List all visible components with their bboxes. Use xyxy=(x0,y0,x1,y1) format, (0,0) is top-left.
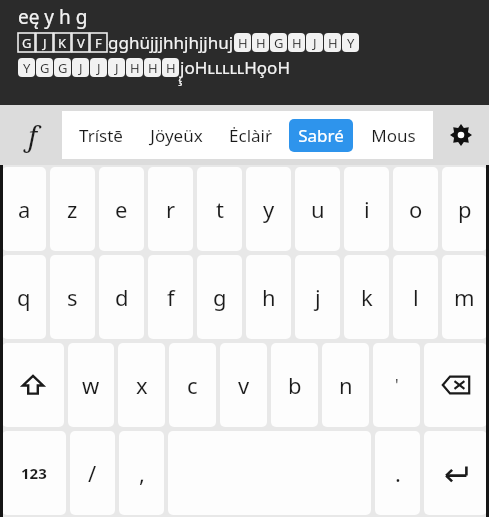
button[interactable]: m xyxy=(442,255,487,339)
button[interactable]: 123 xyxy=(2,431,66,515)
staticText: x xyxy=(136,370,148,400)
button[interactable]: u xyxy=(295,167,340,251)
staticText: n xyxy=(339,370,353,400)
staticText: Trístē xyxy=(79,124,123,147)
staticText: 123 xyxy=(21,463,47,483)
staticText: G xyxy=(22,34,32,52)
button[interactable]: Mous xyxy=(362,119,425,152)
staticText: a xyxy=(18,194,31,224)
staticText: w xyxy=(82,370,100,400)
button[interactable]: Backspace xyxy=(424,343,487,427)
button[interactable]: o xyxy=(393,167,438,251)
staticText: Sabré xyxy=(298,124,344,147)
button[interactable]: j xyxy=(295,255,340,339)
staticText: k xyxy=(361,282,373,312)
staticText: ' xyxy=(395,374,399,396)
button[interactable]: r xyxy=(148,167,193,251)
staticText: K xyxy=(58,34,67,52)
staticText: H xyxy=(130,59,140,77)
staticText: g xyxy=(213,282,227,312)
staticText: d xyxy=(115,282,129,312)
button[interactable]: n xyxy=(322,343,369,427)
staticText: H xyxy=(166,59,176,77)
staticText: H xyxy=(256,34,266,52)
staticText: G xyxy=(40,59,50,77)
staticText: Mous xyxy=(371,124,416,147)
staticText: Y xyxy=(23,59,31,77)
button[interactable]: p xyxy=(442,167,487,251)
staticText: F xyxy=(95,34,102,52)
button[interactable]: i xyxy=(344,167,389,251)
staticText: v xyxy=(238,370,250,400)
staticText: z xyxy=(67,194,78,224)
button[interactable]: k xyxy=(344,255,389,339)
staticText: J xyxy=(43,34,47,52)
button[interactable]: f xyxy=(148,255,193,339)
staticText: f xyxy=(167,282,175,312)
staticText: o xyxy=(409,194,423,224)
button[interactable]: ' xyxy=(373,343,420,427)
button[interactable]: c xyxy=(169,343,216,427)
button[interactable]: Shift xyxy=(2,343,64,427)
staticText: G xyxy=(274,34,284,52)
button[interactable]: / xyxy=(70,431,115,515)
staticText: J xyxy=(79,59,83,77)
button[interactable]: Trístē xyxy=(70,119,132,152)
staticText: Ėclàiṙ xyxy=(229,124,272,147)
staticText: V xyxy=(77,34,85,52)
staticText: i xyxy=(364,194,370,224)
staticText: p xyxy=(458,194,472,224)
button[interactable]: g xyxy=(197,255,242,339)
staticText: j xyxy=(315,282,321,312)
button[interactable]: s xyxy=(50,255,95,339)
button[interactable]: w xyxy=(68,343,114,427)
button[interactable]: Text formatting xyxy=(0,105,62,165)
button[interactable]: b xyxy=(271,343,318,427)
button[interactable]: Ėclàiṙ xyxy=(220,119,281,152)
button[interactable]: h xyxy=(246,255,291,339)
button[interactable]: Sabré xyxy=(289,119,353,152)
staticText: J xyxy=(313,34,317,52)
button[interactable]: Enter xyxy=(424,431,487,515)
button[interactable]: Jöyeüx xyxy=(141,119,212,152)
staticText: b xyxy=(288,370,302,400)
staticText: / xyxy=(88,458,97,488)
button[interactable]: t xyxy=(197,167,242,251)
button[interactable]: d xyxy=(99,255,144,339)
staticText: H xyxy=(328,34,338,52)
staticText: eę y h g xyxy=(18,4,88,30)
button[interactable]: v xyxy=(220,343,267,427)
staticText: q xyxy=(17,282,31,312)
staticText: m xyxy=(454,282,475,312)
staticText: Jöyeüx xyxy=(150,124,203,147)
staticText: t xyxy=(216,194,224,224)
button[interactable]: e xyxy=(99,167,144,251)
staticText: Y xyxy=(347,34,355,52)
staticText: G xyxy=(58,59,68,77)
other: Shift xyxy=(21,373,45,397)
staticText: . xyxy=(395,458,401,488)
button[interactable]: x xyxy=(118,343,165,427)
staticText: J xyxy=(97,59,101,77)
staticText: gghüjjj̇hhjhjjhuj xyxy=(108,31,234,54)
staticText: y xyxy=(263,194,275,224)
staticText: l xyxy=(413,282,419,312)
staticText: ƒ xyxy=(26,117,37,154)
button[interactable]: y xyxy=(246,167,291,251)
button[interactable]: l xyxy=(393,255,438,339)
button[interactable]: z xyxy=(50,167,95,251)
other: Enter xyxy=(443,460,469,486)
staticText: J xyxy=(115,59,119,77)
staticText: u xyxy=(311,194,325,224)
button[interactable]: Settings xyxy=(433,105,489,165)
button[interactable]: q xyxy=(2,255,46,339)
staticText: s xyxy=(67,282,78,312)
button[interactable]: , xyxy=(119,431,164,515)
staticText: , xyxy=(139,458,145,488)
staticText: c xyxy=(187,370,198,400)
staticText: r xyxy=(166,194,176,224)
button[interactable]: a xyxy=(2,167,46,251)
other: Backspace xyxy=(441,370,471,400)
button[interactable]: . xyxy=(375,431,420,515)
